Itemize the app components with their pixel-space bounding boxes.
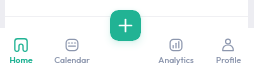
staticText: Calendar [54, 54, 90, 65]
button[interactable]: Home [0, 28, 46, 82]
staticText: Home [9, 54, 33, 65]
button[interactable]: Profile [203, 28, 253, 82]
staticText: Analytics [158, 54, 194, 65]
staticText: Profile [216, 54, 241, 65]
button[interactable]: Calendar [47, 28, 97, 82]
button[interactable]: Analytics [151, 28, 201, 82]
button[interactable]: Add [110, 10, 141, 41]
